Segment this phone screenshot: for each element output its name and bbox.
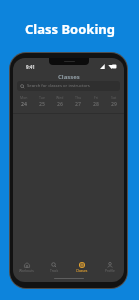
button[interactable]: Tue (33, 94, 51, 113)
staticText: Search for classes or instructors (27, 83, 90, 89)
button[interactable]: Fri (87, 94, 105, 113)
staticText: Fri (94, 95, 99, 100)
staticText: 25 (39, 100, 45, 107)
staticText: Profile (105, 268, 115, 272)
staticText: Wed (56, 95, 64, 100)
button[interactable]: Profile (96, 257, 124, 277)
staticText: Tue (39, 95, 45, 100)
staticText: Classes (58, 73, 80, 81)
staticText: 27 (75, 100, 81, 107)
staticText: 29 (111, 100, 117, 107)
staticText: Sat (111, 95, 117, 100)
staticText: Thu (75, 95, 82, 100)
button[interactable]: Sat (105, 94, 123, 113)
staticText: Track (50, 268, 59, 272)
button[interactable]: Mon (14, 94, 33, 113)
button[interactable]: Track (40, 257, 68, 277)
staticText: 28 (93, 100, 99, 107)
button[interactable]: Workouts (13, 257, 40, 277)
button[interactable]: Classes (68, 257, 96, 277)
staticText: Mon (20, 95, 28, 100)
staticText: Class Booking (25, 20, 115, 38)
button[interactable]: Wed (51, 94, 69, 113)
staticText: 26 (57, 100, 63, 107)
staticText: 24 (21, 100, 27, 107)
staticText: Workouts (19, 268, 34, 272)
staticText: 9:41 (26, 64, 35, 70)
button[interactable]: Search for classes or instructors (17, 81, 120, 91)
staticText: Classes (76, 268, 88, 272)
button[interactable]: Thu (69, 94, 87, 113)
